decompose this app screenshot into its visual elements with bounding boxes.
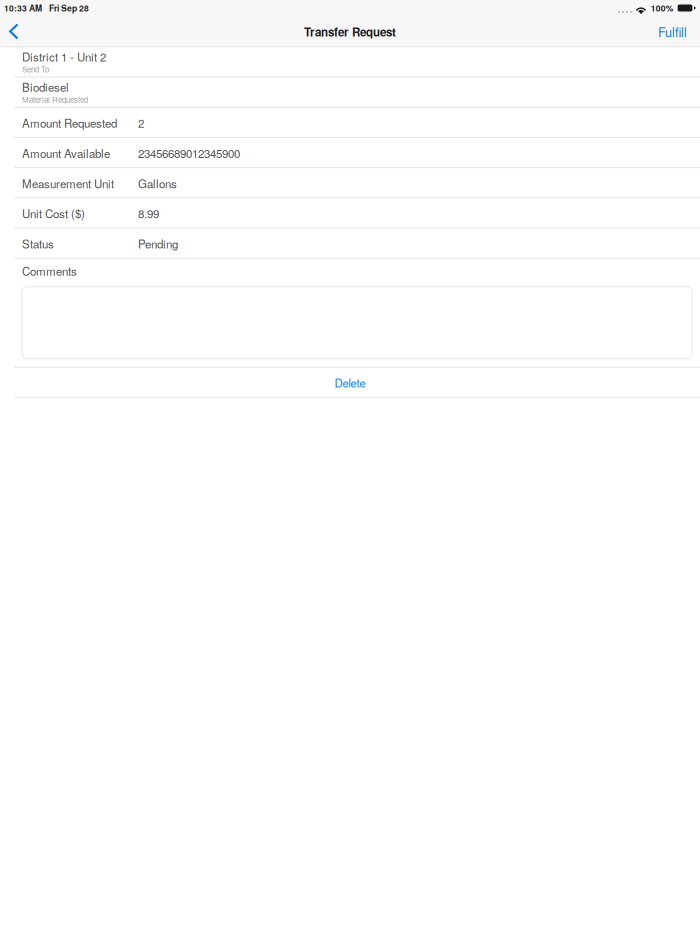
staticText: Comments [22, 262, 77, 279]
staticText: Unit Cost ($) [22, 205, 85, 222]
button[interactable]: Delete [0, 368, 700, 398]
button[interactable]: Back [0, 16, 28, 47]
button[interactable]: Measurement Unit [0, 168, 700, 198]
staticText: Biodiesel [22, 78, 69, 95]
staticText: 10:33 AM [4, 2, 42, 14]
staticText: Send To [22, 63, 49, 75]
staticText: Measurement Unit [22, 175, 114, 191]
staticText: Amount Available [22, 145, 110, 161]
staticText: District 1 - Unit 2 [22, 48, 106, 65]
staticText: Amount Requested [22, 115, 117, 131]
button[interactable]: Amount Available [0, 138, 700, 168]
staticText: Gallons [138, 175, 177, 191]
staticText: Transfer Request [304, 23, 396, 40]
button[interactable]: District 1 - Unit 2 [0, 47, 700, 77]
staticText: Fulfill [658, 22, 687, 41]
button[interactable]: Status [0, 228, 700, 259]
button[interactable]: Amount Requested [0, 108, 700, 138]
staticText: 2 [138, 115, 144, 131]
button[interactable]: Fulfill [658, 16, 700, 47]
staticText: 8.99 [138, 205, 159, 222]
button[interactable]: Biodiesel [0, 77, 700, 108]
staticText: Material Requested [22, 93, 88, 105]
staticText: Status [22, 235, 54, 252]
staticText: 100% [651, 2, 674, 14]
staticText: Pending [138, 235, 178, 252]
staticText: Fri Sep 28 [49, 2, 89, 14]
staticText: 23456689012345900 [138, 145, 240, 161]
button[interactable]: Unit Cost ($) [0, 198, 700, 228]
staticText: Delete [334, 375, 365, 391]
